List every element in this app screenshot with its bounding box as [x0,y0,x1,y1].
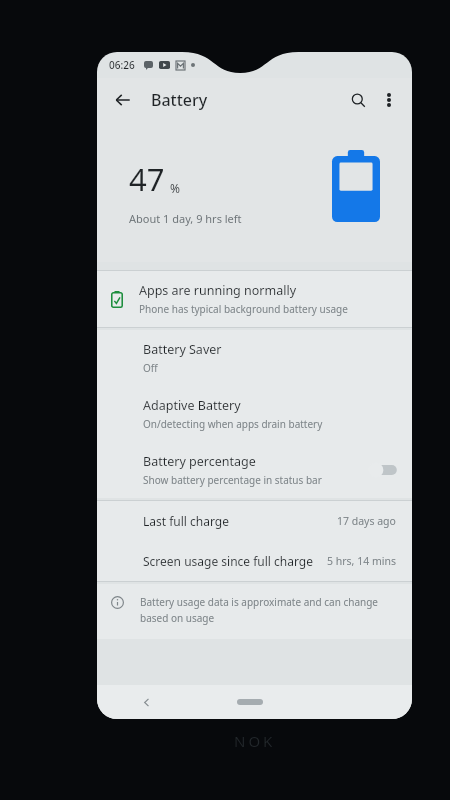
staticText: Apps are running normally [139,282,297,299]
button[interactable]: Home [232,692,268,712]
staticText: Battery [151,89,208,111]
button[interactable]: Back [107,84,139,116]
staticText: Battery Saver [143,341,222,358]
staticText: Show battery percentage in status bar [143,473,322,487]
staticText: Phone has typical background battery usa… [139,302,348,316]
button[interactable]: Last full charge [97,501,412,541]
staticText: On/detecting when apps drain battery [143,417,323,431]
button[interactable]: Screen usage since full charge [97,541,412,581]
button[interactable]: Battery Saver [97,330,412,386]
staticText: Last full charge [143,513,229,529]
staticText: About 1 day, 9 hrs left [129,211,242,226]
staticText: % [170,180,180,196]
button[interactable]: Search [342,84,374,116]
staticText: 06:26 [109,58,135,72]
button[interactable]: More options [374,85,404,115]
staticText: 5 hrs, 14 mins [327,554,396,568]
staticText: Battery usage data is approximate and ca… [140,595,378,609]
staticText: Adaptive Battery [143,397,241,414]
staticText: Off [143,361,158,375]
button[interactable]: Apps are running normally [97,270,412,328]
staticText: NOK [234,731,276,751]
button[interactable]: Adaptive Battery [97,386,412,442]
staticText: Battery percentage [143,453,256,470]
button[interactable]: Battery percentage [97,442,412,498]
staticText: 47 [129,158,165,200]
staticText: Screen usage since full charge [143,553,313,569]
staticText: based on usage [140,611,215,625]
button[interactable]: Back [135,691,157,713]
staticText: 17 days ago [337,514,396,528]
